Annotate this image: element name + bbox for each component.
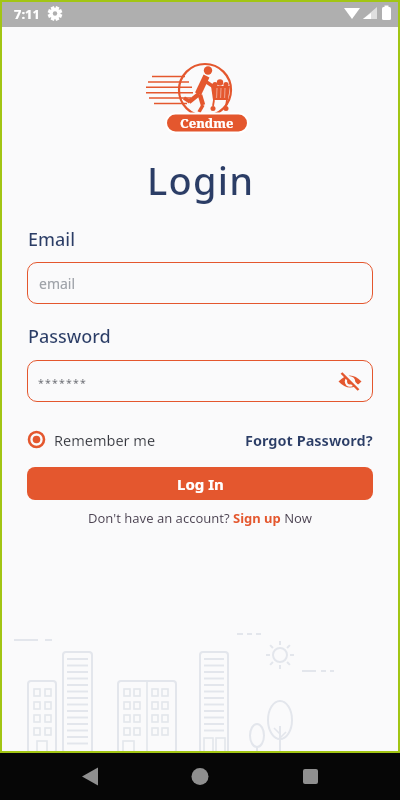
button[interactable]: Log In: [27, 467, 373, 500]
button[interactable]: [338, 369, 362, 393]
staticText: Remember me: [54, 430, 156, 450]
button[interactable]: *******: [27, 360, 373, 402]
button[interactable]: Forgot Password?: [245, 430, 373, 450]
button[interactable]: email: [27, 262, 373, 304]
button[interactable]: [170, 753, 230, 800]
staticText: Login: [147, 154, 255, 206]
button[interactable]: Remember me: [28, 430, 178, 450]
staticText: Log In: [177, 474, 224, 494]
staticText: *******: [38, 376, 87, 390]
button[interactable]: [280, 753, 340, 800]
staticText: 7:11: [14, 5, 40, 23]
button[interactable]: Don't have an account? Sign up Now: [88, 509, 312, 527]
button[interactable]: [70, 753, 130, 800]
staticText: Password: [28, 324, 111, 349]
staticText: Cendme: [180, 114, 234, 132]
staticText: email: [39, 274, 76, 293]
staticText: Email: [28, 227, 76, 252]
